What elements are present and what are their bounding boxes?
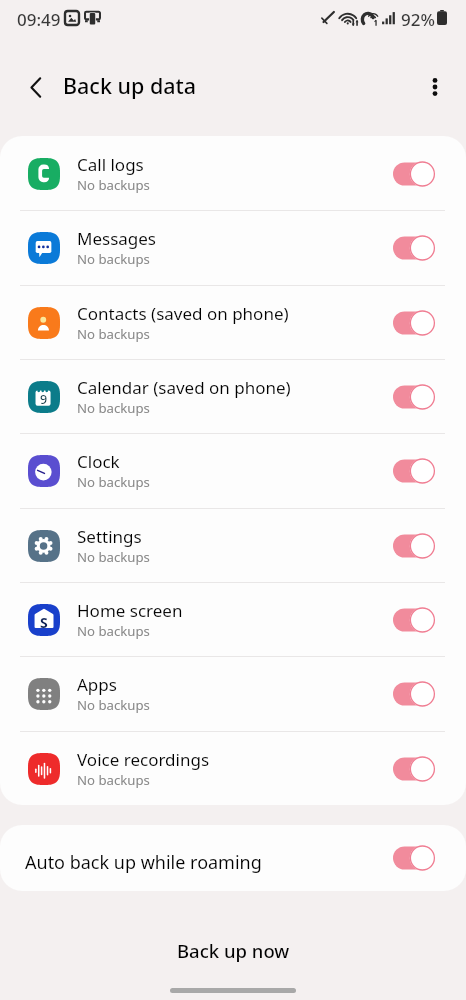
button[interactable]: Clock <box>0 433 466 508</box>
button[interactable]: Navigate up <box>15 66 57 108</box>
button[interactable]: Toggle on <box>393 755 435 783</box>
button[interactable]: Toggle on <box>393 383 435 411</box>
button[interactable]: Toggle on <box>393 606 435 634</box>
staticText: Settings <box>77 525 142 548</box>
button[interactable]: Auto back up while roaming <box>0 825 466 891</box>
button[interactable]: Back up now <box>0 922 466 978</box>
button[interactable]: Toggle on <box>393 457 435 485</box>
button[interactable]: More options <box>414 66 456 108</box>
staticText: Clock <box>77 450 120 473</box>
button[interactable]: Toggle on <box>393 844 435 872</box>
staticText: No backups <box>77 548 150 566</box>
button[interactable]: Messages <box>0 210 466 285</box>
staticText: No backups <box>77 622 150 640</box>
staticText: 9 <box>40 391 48 408</box>
staticText: Home screen <box>77 599 183 622</box>
button[interactable]: 9 <box>0 359 466 434</box>
staticText: No backups <box>77 696 150 714</box>
button[interactable]: Toggle on <box>393 160 435 188</box>
button[interactable]: Voice recordings <box>0 731 466 805</box>
staticText: Call logs <box>77 153 144 176</box>
staticText: Voice recordings <box>77 748 210 771</box>
staticText: No backups <box>77 473 150 491</box>
staticText: No backups <box>77 176 150 194</box>
staticText: Messages <box>77 227 157 250</box>
button[interactable]: Apps <box>0 656 466 731</box>
staticText: 92% <box>401 8 435 31</box>
staticText: Back up now <box>177 938 290 963</box>
button[interactable]: S <box>0 582 466 657</box>
staticText: Apps <box>77 673 117 696</box>
staticText: No backups <box>77 250 150 268</box>
staticText: Contacts (saved on phone) <box>77 302 289 325</box>
button[interactable]: Toggle on <box>393 680 435 708</box>
staticText: Auto back up while roaming <box>25 850 262 875</box>
staticText: Calendar (saved on phone) <box>77 376 291 399</box>
staticText: No backups <box>77 325 150 343</box>
button[interactable]: Toggle on <box>393 532 435 560</box>
staticText: Back up data <box>63 71 197 100</box>
button[interactable]: Contacts (saved on phone) <box>0 285 466 360</box>
staticText: 09:49 <box>17 8 61 31</box>
staticText: S <box>40 613 48 632</box>
staticText: No backups <box>77 771 150 789</box>
button[interactable]: Toggle on <box>393 309 435 337</box>
button[interactable]: Toggle on <box>393 234 435 262</box>
button[interactable]: Settings <box>0 508 466 583</box>
button[interactable]: Call logs <box>0 136 466 211</box>
staticText: No backups <box>77 399 150 417</box>
